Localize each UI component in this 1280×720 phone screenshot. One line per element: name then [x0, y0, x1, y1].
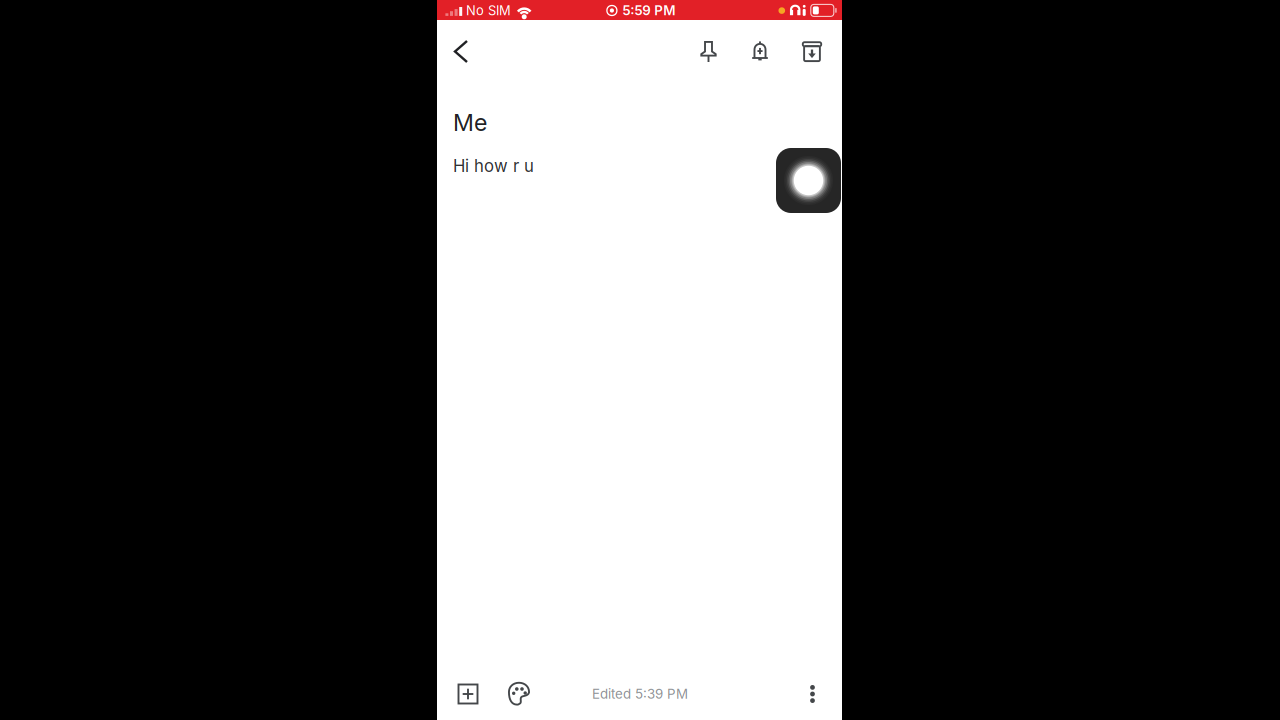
button[interactable]: Pin note — [685, 28, 731, 74]
staticText: No SIM — [466, 3, 511, 18]
button[interactable]: Back — [439, 29, 483, 73]
button[interactable]: Add checkbox or image — [445, 671, 491, 717]
button[interactable]: Add reminder — [737, 28, 783, 74]
staticText: 5:59 PM — [622, 2, 675, 18]
staticText: Me — [453, 108, 487, 137]
staticText: Hi how r u — [453, 156, 534, 176]
button[interactable]: Archive — [789, 28, 835, 74]
button[interactable]: More options — [789, 671, 835, 717]
button[interactable]: Change note colour — [496, 671, 542, 717]
staticText: Edited 5:39 PM — [592, 686, 688, 702]
